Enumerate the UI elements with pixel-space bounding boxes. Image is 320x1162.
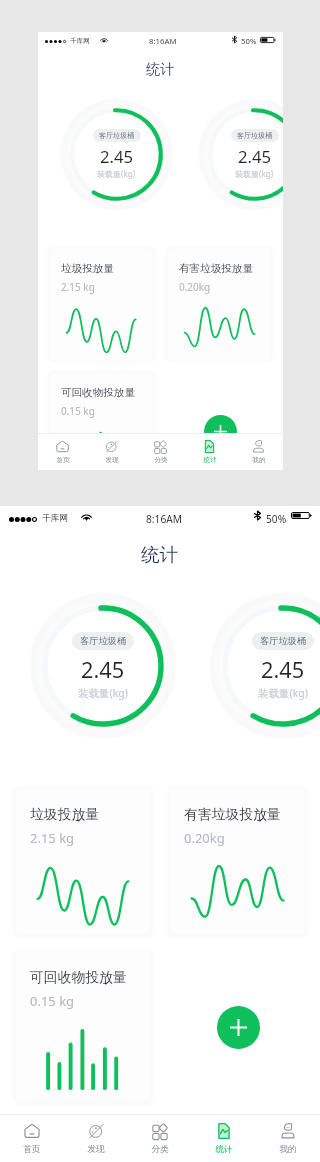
button[interactable]: 有害垃圾投放量 bbox=[170, 789, 305, 934]
staticText: 统计 bbox=[141, 543, 179, 566]
staticText: 客厅垃圾桶 bbox=[237, 131, 273, 140]
staticText: 分类 bbox=[151, 1144, 169, 1155]
button[interactable]: 垃圾投放量 bbox=[16, 789, 151, 934]
staticText: 8:16AM bbox=[149, 36, 177, 47]
staticText: 千库网 bbox=[70, 37, 90, 45]
staticText: 统计 bbox=[203, 456, 217, 464]
staticText: 2.45 bbox=[81, 655, 125, 685]
staticText: 垃圾投放量 bbox=[61, 262, 114, 275]
staticText: 客厅垃圾桶 bbox=[99, 131, 135, 140]
button[interactable]: Add bbox=[217, 1006, 260, 1049]
button[interactable]: 我的 bbox=[256, 1115, 320, 1162]
button[interactable]: 统计 bbox=[185, 434, 234, 470]
staticText: 装载量(kg) bbox=[97, 168, 136, 179]
staticText: 2.45 bbox=[238, 145, 272, 168]
staticText: 统计 bbox=[215, 1144, 233, 1155]
staticText: 可回收物投放量 bbox=[61, 386, 135, 399]
staticText: 发现 bbox=[87, 1144, 105, 1155]
staticText: 有害垃圾投放量 bbox=[184, 806, 281, 823]
button[interactable]: Add bbox=[204, 415, 237, 448]
staticText: 50% bbox=[266, 512, 287, 526]
staticText: 客厅垃圾桶 bbox=[80, 635, 126, 647]
button[interactable]: 分类 bbox=[128, 1115, 192, 1162]
staticText: 我的 bbox=[279, 1144, 297, 1155]
staticText: 0.20kg bbox=[184, 829, 225, 847]
button[interactable]: 首页 bbox=[38, 434, 87, 470]
staticText: 装载量(kg) bbox=[258, 686, 308, 700]
staticText: 装载量(kg) bbox=[235, 168, 274, 179]
button[interactable]: 可回收物投放量 bbox=[50, 373, 153, 470]
button[interactable]: 发现 bbox=[87, 434, 136, 470]
staticText: 0.20kg bbox=[179, 280, 211, 294]
staticText: 2.15 kg bbox=[30, 829, 75, 847]
button[interactable]: 首页 bbox=[0, 1115, 64, 1162]
staticText: 垃圾投放量 bbox=[30, 806, 99, 823]
staticText: 可回收物投放量 bbox=[30, 969, 127, 986]
staticText: 客厅垃圾桶 bbox=[260, 635, 306, 647]
staticText: 0.15 kg bbox=[61, 404, 95, 418]
button[interactable]: 统计 bbox=[192, 1115, 256, 1162]
staticText: 千库网 bbox=[42, 513, 68, 524]
staticText: 统计 bbox=[146, 60, 175, 78]
staticText: 首页 bbox=[56, 456, 70, 464]
button[interactable]: 垃圾投放量 bbox=[50, 249, 153, 360]
staticText: 分类 bbox=[154, 456, 168, 464]
button[interactable]: 有害垃圾投放量 bbox=[168, 249, 271, 360]
staticText: 2.45 bbox=[261, 655, 305, 685]
staticText: 0.15 kg bbox=[30, 992, 75, 1010]
button[interactable]: 发现 bbox=[64, 1115, 128, 1162]
staticText: 装载量(kg) bbox=[78, 686, 128, 700]
staticText: 50% bbox=[241, 36, 257, 47]
button[interactable]: 我的 bbox=[234, 434, 283, 470]
button[interactable]: 可回收物投放量 bbox=[16, 952, 151, 1101]
staticText: 8:16AM bbox=[146, 512, 182, 526]
staticText: 2.45 bbox=[100, 145, 134, 168]
staticText: 有害垃圾投放量 bbox=[179, 262, 253, 275]
staticText: 首页 bbox=[23, 1144, 41, 1155]
staticText: 我的 bbox=[252, 456, 266, 464]
button[interactable]: 分类 bbox=[136, 434, 185, 470]
staticText: 发现 bbox=[105, 456, 119, 464]
staticText: 2.15 kg bbox=[61, 280, 95, 294]
